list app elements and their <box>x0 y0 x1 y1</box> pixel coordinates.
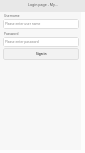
button[interactable]: Sign in <box>3 48 79 60</box>
staticText: Username <box>4 14 20 18</box>
staticText: Please enter password <box>5 40 39 44</box>
staticText: Password <box>4 32 19 36</box>
button[interactable]: Please enter user name <box>3 19 79 29</box>
staticText: Sign in <box>36 52 47 56</box>
staticText: Please enter user name <box>5 22 41 26</box>
staticText: Login page - My... <box>28 2 58 7</box>
button[interactable]: Browser tab <box>0 0 85 12</box>
button[interactable]: Please enter password <box>3 37 79 47</box>
